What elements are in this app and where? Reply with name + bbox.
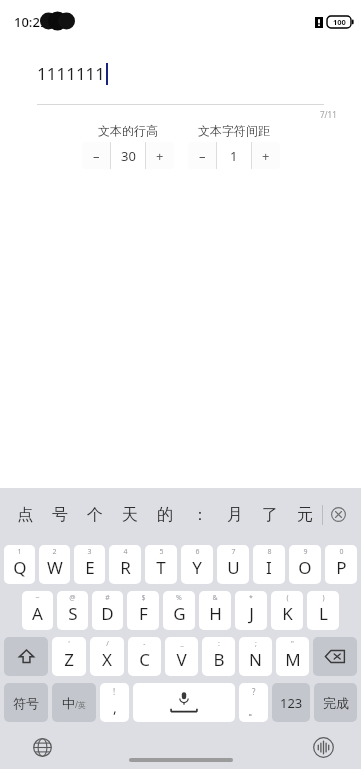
staticText: ! [113, 686, 116, 697]
staticText: ~ [35, 593, 40, 603]
staticText: ' [68, 639, 70, 649]
staticText: V [176, 648, 187, 671]
button[interactable]: : [202, 637, 235, 676]
staticText: J [249, 602, 254, 625]
button[interactable]: 6 [181, 545, 213, 584]
button[interactable]: " [276, 637, 309, 676]
staticText: ; [255, 639, 257, 649]
staticText: Y [192, 556, 202, 579]
button[interactable]: + [252, 142, 280, 169]
button[interactable]: 中 [52, 683, 96, 722]
staticText: + [262, 147, 270, 165]
button[interactable]: ( [271, 591, 303, 630]
staticText: - [143, 639, 146, 649]
staticText: ? [252, 686, 256, 697]
button[interactable]: 123 [272, 683, 310, 722]
button[interactable]: 4 [109, 545, 141, 584]
button[interactable]: 号 [42, 488, 77, 541]
button[interactable]: – [82, 142, 110, 169]
staticText: @ [69, 593, 76, 603]
staticText: 完成 [323, 695, 349, 711]
staticText: 0 [339, 547, 344, 557]
button[interactable]: - [128, 637, 161, 676]
button[interactable]: 1 [4, 545, 35, 584]
staticText: 1 [17, 547, 22, 557]
staticText: 1 [230, 147, 238, 165]
button[interactable]: ' [52, 637, 86, 676]
staticText: F [139, 602, 148, 625]
staticText: S [68, 602, 78, 625]
button[interactable]: 的 [147, 488, 182, 541]
staticText: A [32, 602, 43, 625]
staticText: T [156, 556, 166, 579]
staticText: 100 [333, 17, 346, 27]
button[interactable]: % [163, 591, 195, 630]
staticText: O [298, 556, 312, 579]
button[interactable]: 7 [217, 545, 249, 584]
button[interactable]: 8 [253, 545, 285, 584]
button[interactable]: 0 [325, 545, 357, 584]
staticText: L [319, 602, 328, 625]
staticText: # [105, 593, 110, 603]
staticText: K [282, 602, 293, 625]
button[interactable]: Close suggestions [323, 488, 353, 541]
button[interactable]: @ [57, 591, 88, 630]
staticText: ) [322, 593, 325, 603]
staticText: B [213, 648, 225, 671]
button[interactable]: 天 [112, 488, 147, 541]
button[interactable]: 9 [289, 545, 321, 584]
staticText: 2 [52, 547, 57, 557]
staticText: U [227, 556, 240, 579]
button[interactable]: 了 [252, 488, 287, 541]
button[interactable]: ~ [22, 591, 53, 630]
button[interactable]: 月 [217, 488, 252, 541]
staticText: 4 [123, 547, 128, 557]
staticText: 中 [62, 695, 75, 711]
button[interactable]: 5 [145, 545, 177, 584]
button[interactable]: * [235, 591, 267, 630]
button[interactable]: ; [239, 637, 272, 676]
button[interactable]: 3 [74, 545, 105, 584]
button[interactable]: Space [133, 683, 235, 722]
button[interactable]: # [92, 591, 123, 630]
button[interactable]: 符号 [4, 683, 48, 722]
staticText: N [249, 648, 262, 671]
staticText: E [85, 556, 95, 579]
button[interactable]: 2 [39, 545, 70, 584]
staticText: 1111111 [37, 62, 106, 85]
staticText: / [106, 639, 109, 649]
staticText: & [212, 593, 218, 603]
staticText: – [199, 147, 206, 165]
button[interactable]: Change keyboard language [30, 735, 54, 759]
button[interactable]: $ [127, 591, 159, 630]
button[interactable]: 完成 [314, 683, 357, 722]
staticText: 天 [122, 505, 138, 525]
staticText: ( [286, 593, 289, 603]
staticText: C [139, 648, 150, 671]
button[interactable]: ! [100, 683, 129, 722]
staticText: ： [192, 505, 208, 525]
button[interactable]: Voice input [311, 735, 335, 759]
staticText: 元 [297, 505, 313, 525]
staticText: M [285, 648, 301, 671]
button[interactable]: 个 [77, 488, 112, 541]
staticText: + [156, 147, 164, 165]
button[interactable]: / [90, 637, 124, 676]
button[interactable]: & [199, 591, 231, 630]
staticText: 123 [280, 694, 303, 712]
button[interactable]: ： [182, 488, 217, 541]
button[interactable]: ) [307, 591, 339, 630]
staticText: 文本字符间距 [198, 123, 270, 138]
button[interactable]: _ [165, 637, 198, 676]
button[interactable]: ? [239, 683, 268, 722]
button[interactable]: + [146, 142, 174, 169]
staticText: 的 [157, 505, 173, 525]
staticText: 7 [231, 547, 236, 557]
button[interactable]: Shift [4, 637, 48, 676]
staticText: Z [64, 648, 74, 671]
button[interactable]: Backspace [313, 637, 357, 676]
button[interactable]: – [188, 142, 216, 169]
button[interactable]: 点 [8, 488, 42, 541]
staticText: 个 [87, 505, 103, 525]
button[interactable]: 元 [287, 488, 322, 541]
